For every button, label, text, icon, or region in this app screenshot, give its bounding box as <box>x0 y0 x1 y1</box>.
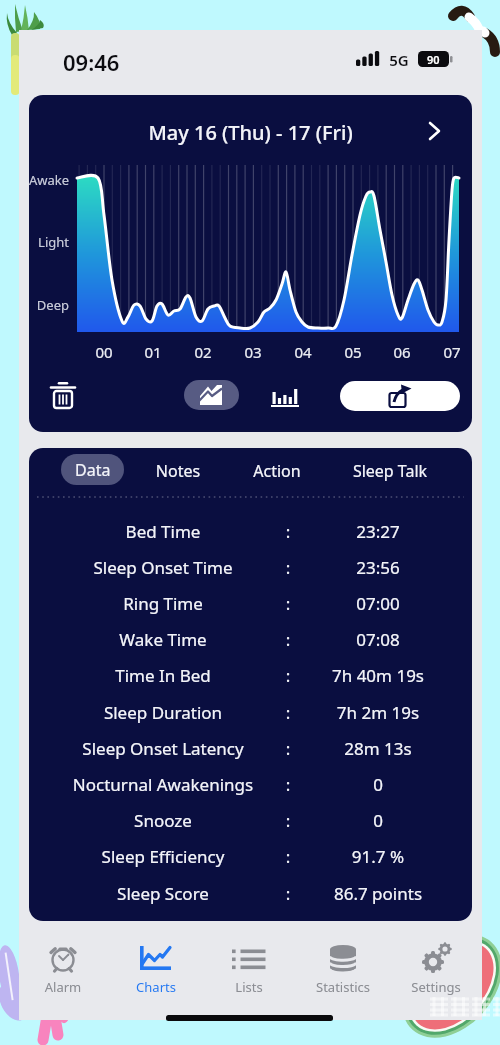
staticText: 06 <box>387 342 417 362</box>
staticText: 90 <box>427 52 440 67</box>
staticText: 7h 40m 19s <box>298 664 458 687</box>
staticText: Sleep Score <box>33 882 293 905</box>
staticText: 01 <box>138 342 168 362</box>
staticText: 5G <box>385 50 413 70</box>
button[interactable] <box>184 380 239 410</box>
staticText: : <box>279 664 297 687</box>
staticText: : <box>279 845 297 868</box>
staticText: Sleep Talk <box>350 460 430 482</box>
button[interactable] <box>429 122 441 140</box>
staticText: 07 <box>437 342 467 362</box>
staticText: 0 <box>298 773 458 796</box>
button[interactable]: Charts <box>110 938 202 994</box>
staticText: Charts <box>110 978 202 996</box>
staticText: Sleep Onset Time <box>33 556 293 579</box>
staticText: Notes <box>138 460 218 482</box>
staticText: 86.7 points <box>298 882 458 905</box>
staticText: Action <box>237 460 317 482</box>
staticText: : <box>279 628 297 651</box>
staticText: Lists <box>203 978 295 996</box>
staticText: 7h 2m 19s <box>298 701 458 724</box>
staticText: Snooze <box>33 809 293 832</box>
button[interactable]: Action <box>237 460 317 482</box>
staticText: Sleep Duration <box>33 701 293 724</box>
staticText: 23:27 <box>298 520 458 543</box>
button[interactable]: May 16 (Thu) - 17 (Fri) <box>29 119 472 146</box>
staticText: Alarm <box>17 978 109 996</box>
button[interactable]: Notes <box>138 460 218 482</box>
button[interactable]: Statistics <box>297 938 389 994</box>
staticText: Bed Time <box>33 520 293 543</box>
button[interactable]: Settings <box>390 938 482 994</box>
staticText: 00 <box>89 342 119 362</box>
button[interactable]: Lists <box>203 938 295 994</box>
staticText: : <box>279 520 297 543</box>
staticText: Deep <box>29 296 69 314</box>
staticText: 28m 13s <box>298 737 458 760</box>
button[interactable]: Alarm <box>17 938 109 994</box>
staticText: Awake <box>29 171 69 189</box>
staticText: 91.7 % <box>298 845 458 868</box>
staticText: 23:56 <box>298 556 458 579</box>
staticText: 07:00 <box>298 592 458 615</box>
staticText: 04 <box>288 342 318 362</box>
staticText: Sleep Onset Latency <box>33 737 293 760</box>
staticText: : <box>279 809 297 832</box>
staticText: : <box>279 556 297 579</box>
staticText: 07:08 <box>298 628 458 651</box>
staticText: : <box>279 737 297 760</box>
staticText: Statistics <box>297 978 389 996</box>
staticText: : <box>279 592 297 615</box>
staticText: Settings <box>390 978 482 996</box>
button[interactable] <box>271 383 299 407</box>
staticText: 03 <box>238 342 268 362</box>
staticText: 02 <box>188 342 218 362</box>
staticText: : <box>279 701 297 724</box>
staticText: : <box>279 773 297 796</box>
staticText: : <box>279 882 297 905</box>
button[interactable]: Data <box>61 454 124 485</box>
staticText: May 16 (Thu) - 17 (Fri) <box>29 119 472 146</box>
staticText: Time In Bed <box>33 664 293 687</box>
staticText: Wake Time <box>33 628 293 651</box>
staticText: Light <box>29 233 69 251</box>
staticText: Ring Time <box>33 592 293 615</box>
staticText: Data <box>75 459 111 481</box>
staticText: 0 <box>298 809 458 832</box>
staticText: Sleep Efficiency <box>33 845 293 868</box>
button[interactable] <box>50 381 76 409</box>
staticText: 05 <box>338 342 368 362</box>
staticText: 09:46 <box>63 47 153 77</box>
staticText: Nocturnal Awakenings <box>33 773 293 796</box>
button[interactable]: Sleep Talk <box>350 460 430 482</box>
button[interactable] <box>340 381 460 411</box>
